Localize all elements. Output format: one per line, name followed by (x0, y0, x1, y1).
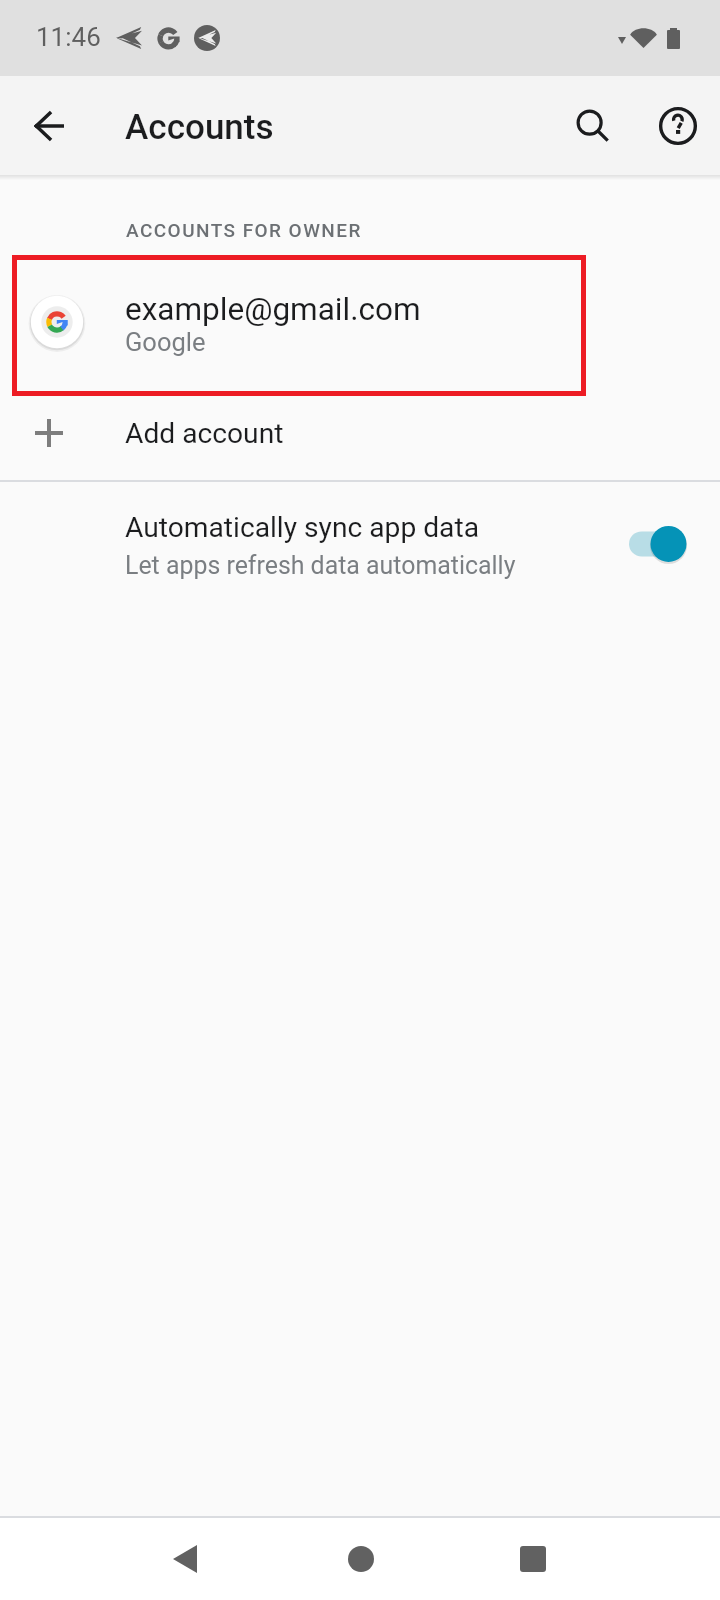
button[interactable]: Back (7, 84, 91, 168)
button[interactable]: Home (325, 1523, 397, 1595)
staticText: Accounts (125, 107, 274, 148)
button[interactable]: Back (149, 1523, 221, 1595)
staticText: example@gmail.com (125, 291, 421, 328)
button[interactable]: Help (636, 84, 720, 168)
button[interactable]: Add account (0, 398, 720, 480)
staticText: 11:46 (36, 22, 101, 52)
staticText: Automatically sync app data (125, 511, 480, 544)
staticText: Google (125, 327, 206, 357)
button[interactable]: Automatically sync app data (620, 506, 696, 578)
button[interactable]: Recent apps (497, 1523, 569, 1595)
button[interactable]: Automatically sync app data (0, 482, 720, 604)
button[interactable]: Search (551, 84, 635, 168)
staticText: ACCOUNTS FOR OWNER (126, 219, 362, 241)
staticText: Add account (125, 417, 284, 450)
button[interactable]: example@gmail.com (0, 255, 720, 396)
staticText: Let apps refresh data automatically (125, 551, 516, 580)
